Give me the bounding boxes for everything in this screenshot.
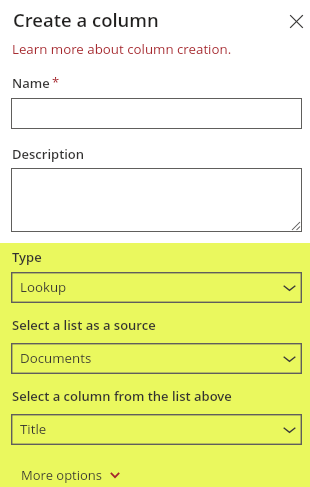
staticText: *: [52, 73, 60, 91]
staticText: More options: [21, 466, 103, 484]
button[interactable]: [11, 98, 302, 129]
staticText: Documents: [20, 349, 92, 367]
button[interactable]: [11, 168, 302, 232]
button[interactable]: Lookup: [11, 272, 302, 303]
staticText: Select a list as a source: [12, 316, 156, 334]
button[interactable]: More options: [21, 466, 113, 484]
staticText: Lookup: [20, 278, 67, 296]
button[interactable]: Documents: [11, 343, 302, 374]
staticText: Title: [20, 420, 47, 438]
staticText: Select a column from the list above: [12, 387, 232, 405]
staticText: Learn more about column creation.: [12, 40, 232, 58]
staticText: Type: [12, 248, 42, 266]
button[interactable]: Learn more about column creation.: [12, 40, 232, 58]
staticText: Name: [12, 74, 50, 92]
staticText: Description: [12, 145, 85, 163]
staticText: Create a column: [13, 7, 159, 32]
button[interactable]: Close: [286, 11, 307, 32]
button[interactable]: Title: [11, 414, 302, 445]
